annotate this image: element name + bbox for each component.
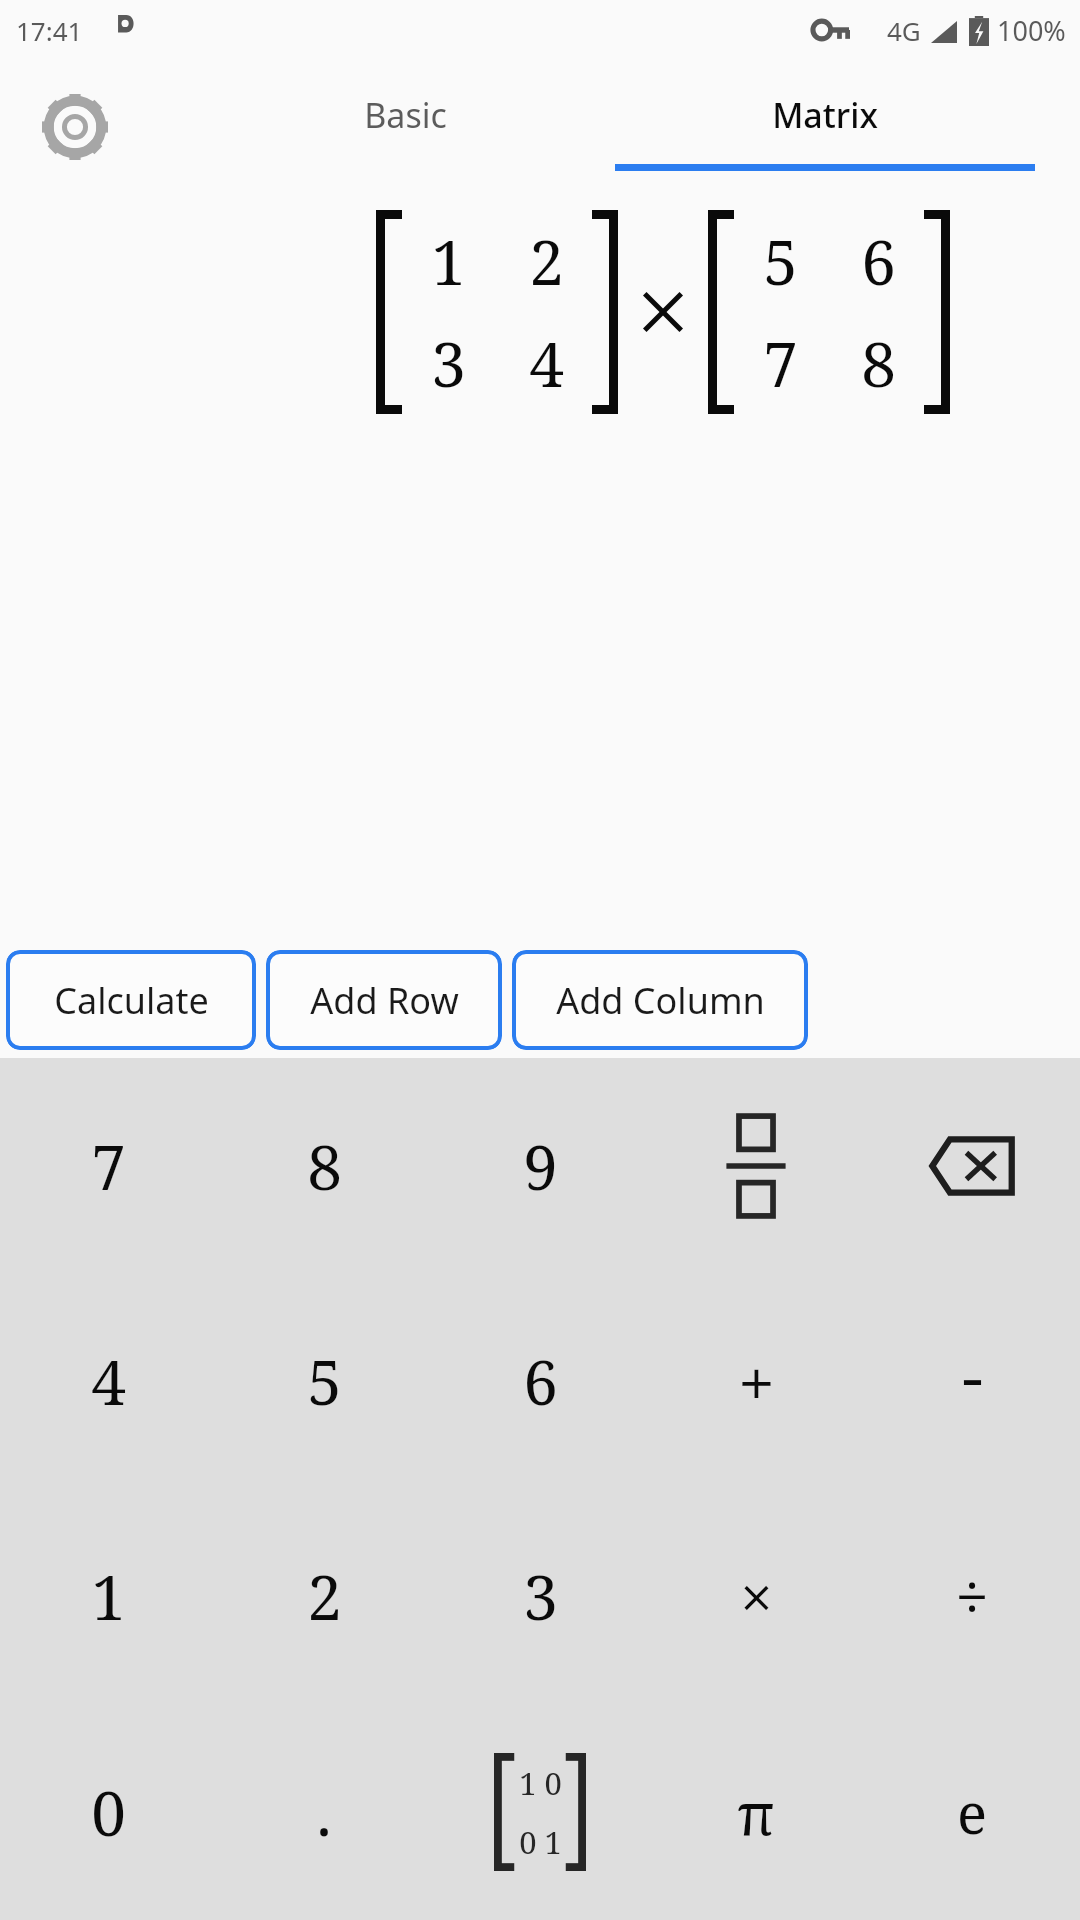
staticText: 6 bbox=[523, 1339, 558, 1423]
staticText: 8 bbox=[861, 321, 896, 405]
staticText: 7 bbox=[91, 1124, 126, 1208]
staticText: 5 bbox=[307, 1339, 342, 1423]
staticText: - bbox=[962, 1330, 983, 1420]
staticText: e bbox=[957, 1774, 987, 1850]
button[interactable]: Add Row bbox=[266, 950, 502, 1050]
button[interactable]: 7 bbox=[0, 1058, 216, 1273]
staticText: × bbox=[740, 1557, 773, 1636]
button[interactable]: Calculate bbox=[6, 950, 256, 1050]
button[interactable]: Matrix bbox=[615, 60, 1035, 170]
button[interactable]: 5 bbox=[216, 1273, 432, 1488]
button[interactable]: 0 bbox=[0, 1704, 216, 1920]
staticText: 5 bbox=[763, 219, 798, 303]
staticText: π bbox=[737, 1773, 775, 1852]
staticText: 7 bbox=[763, 321, 798, 405]
staticText: 1 bbox=[431, 219, 466, 303]
staticText: 2 bbox=[529, 219, 564, 303]
button[interactable]: + bbox=[648, 1273, 864, 1488]
button[interactable]: Basic bbox=[195, 60, 615, 170]
button[interactable]: Fraction bbox=[648, 1058, 864, 1273]
staticText: 0 1 bbox=[519, 1821, 562, 1863]
button[interactable]: 8 bbox=[216, 1058, 432, 1273]
staticText: 4 bbox=[529, 321, 564, 405]
button[interactable]: Backspace bbox=[864, 1058, 1080, 1273]
staticText: + bbox=[738, 1336, 775, 1426]
staticText: 4 bbox=[91, 1339, 126, 1423]
staticText: . bbox=[316, 1770, 332, 1854]
button[interactable]: . bbox=[216, 1704, 432, 1920]
staticText: 2 bbox=[307, 1554, 342, 1638]
staticText: 1 bbox=[91, 1554, 126, 1638]
staticText: 3 bbox=[523, 1554, 558, 1638]
staticText: 3 bbox=[431, 321, 466, 405]
button[interactable]: 1 bbox=[0, 1488, 216, 1704]
staticText: 100% bbox=[997, 12, 1066, 49]
staticText: 8 bbox=[307, 1124, 342, 1208]
button[interactable]: π bbox=[648, 1704, 864, 1920]
button[interactable]: 2 bbox=[216, 1488, 432, 1704]
button[interactable]: Settings bbox=[20, 72, 130, 182]
button[interactable]: e bbox=[864, 1704, 1080, 1920]
button[interactable]: - bbox=[864, 1273, 1080, 1488]
staticText: Matrix bbox=[772, 92, 878, 138]
button[interactable]: 3 bbox=[432, 1488, 648, 1704]
staticText: 17:41 bbox=[16, 13, 83, 48]
button[interactable]: 4 bbox=[0, 1273, 216, 1488]
staticText: 9 bbox=[523, 1124, 558, 1208]
staticText: 6 bbox=[861, 219, 896, 303]
button[interactable]: 6 bbox=[432, 1273, 648, 1488]
staticText: Add Row bbox=[310, 976, 459, 1025]
button[interactable]: 9 bbox=[432, 1058, 648, 1273]
staticText: ÷ bbox=[955, 1555, 989, 1637]
button[interactable]: Add Column bbox=[512, 950, 808, 1050]
staticText: Calculate bbox=[54, 976, 209, 1025]
staticText: 1 0 bbox=[519, 1762, 562, 1804]
staticText: Basic bbox=[364, 92, 447, 138]
button[interactable]: ÷ bbox=[864, 1488, 1080, 1704]
staticText: 0 bbox=[91, 1770, 126, 1854]
staticText: 4G bbox=[887, 13, 921, 48]
button[interactable]: Identity matrix bbox=[432, 1704, 648, 1920]
button[interactable]: × bbox=[648, 1488, 864, 1704]
staticText: Add Column bbox=[556, 976, 765, 1025]
